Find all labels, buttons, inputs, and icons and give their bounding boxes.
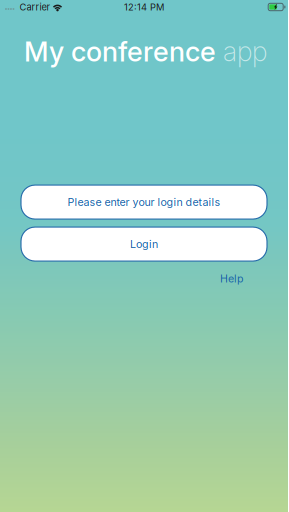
staticText: 12:14 PM — [124, 1, 164, 13]
staticText: Login — [130, 238, 158, 250]
staticText: My conference — [24, 35, 216, 68]
button[interactable]: Help — [21, 261, 267, 285]
staticText: Help — [220, 272, 244, 285]
button[interactable]: Please enter your login details — [21, 185, 267, 219]
staticText: Carrier — [19, 1, 50, 13]
staticText: Please enter your login details — [67, 196, 220, 208]
button[interactable]: Login — [21, 227, 267, 261]
staticText: app — [216, 35, 267, 68]
